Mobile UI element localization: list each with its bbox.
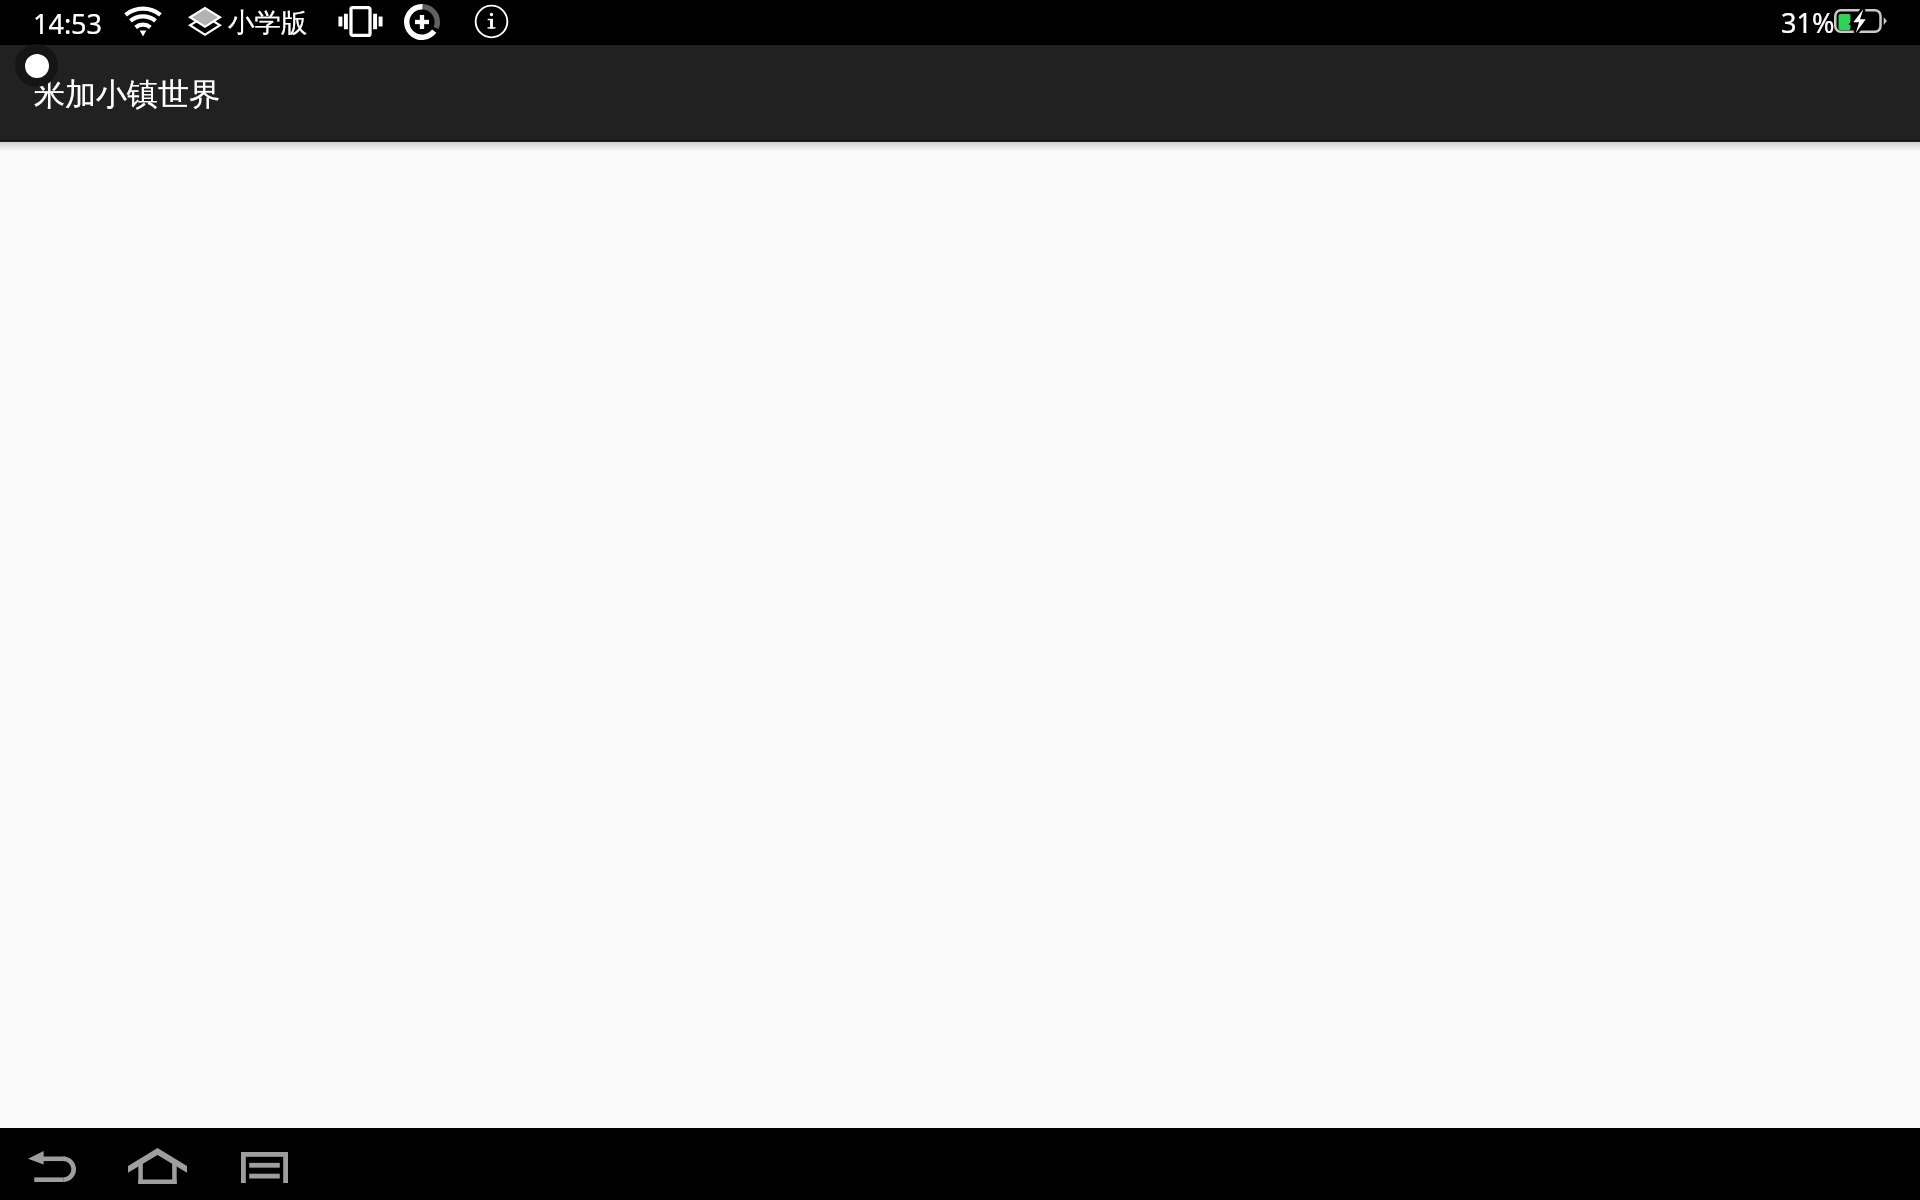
button[interactable]: Recent apps	[224, 1134, 304, 1200]
staticText: 米加小镇世界	[34, 75, 220, 114]
button[interactable]: Back	[8, 1128, 96, 1200]
staticText: 小学版	[228, 6, 308, 39]
button[interactable]: Accessibility menu	[15, 44, 58, 87]
staticText: 31%	[1781, 4, 1835, 41]
button[interactable]: Home	[117, 1133, 197, 1199]
staticText: 14:53	[33, 5, 103, 42]
